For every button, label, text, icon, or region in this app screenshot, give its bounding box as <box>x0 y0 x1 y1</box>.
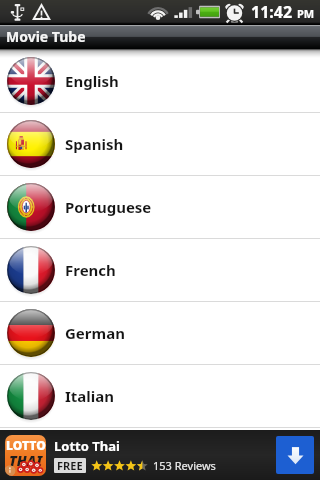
staticText: English <box>65 71 119 91</box>
staticText: THAI <box>9 451 43 470</box>
button[interactable]: Download <box>276 436 314 474</box>
staticText: Lotto Thai <box>54 437 120 455</box>
button[interactable]: French <box>0 239 320 301</box>
staticText: Spanish <box>65 134 124 154</box>
staticText: 153 Reviews <box>153 458 216 473</box>
button[interactable]: German <box>0 302 320 364</box>
button[interactable]: Portuguese <box>0 176 320 238</box>
button[interactable]: English <box>0 49 320 112</box>
button[interactable]: Italian <box>0 365 320 427</box>
button[interactable]: LOTTO <box>0 430 320 480</box>
staticText: 11:42 <box>251 1 293 23</box>
staticText: LOTTO <box>6 437 46 453</box>
staticText: Portuguese <box>65 197 152 217</box>
staticText: FREE <box>57 458 83 473</box>
button[interactable]: Spanish <box>0 113 320 175</box>
staticText: German <box>65 323 125 343</box>
staticText: PM <box>297 6 315 21</box>
staticText: Italian <box>65 386 115 406</box>
staticText: Movie Tube <box>6 27 86 46</box>
staticText: French <box>65 260 116 280</box>
